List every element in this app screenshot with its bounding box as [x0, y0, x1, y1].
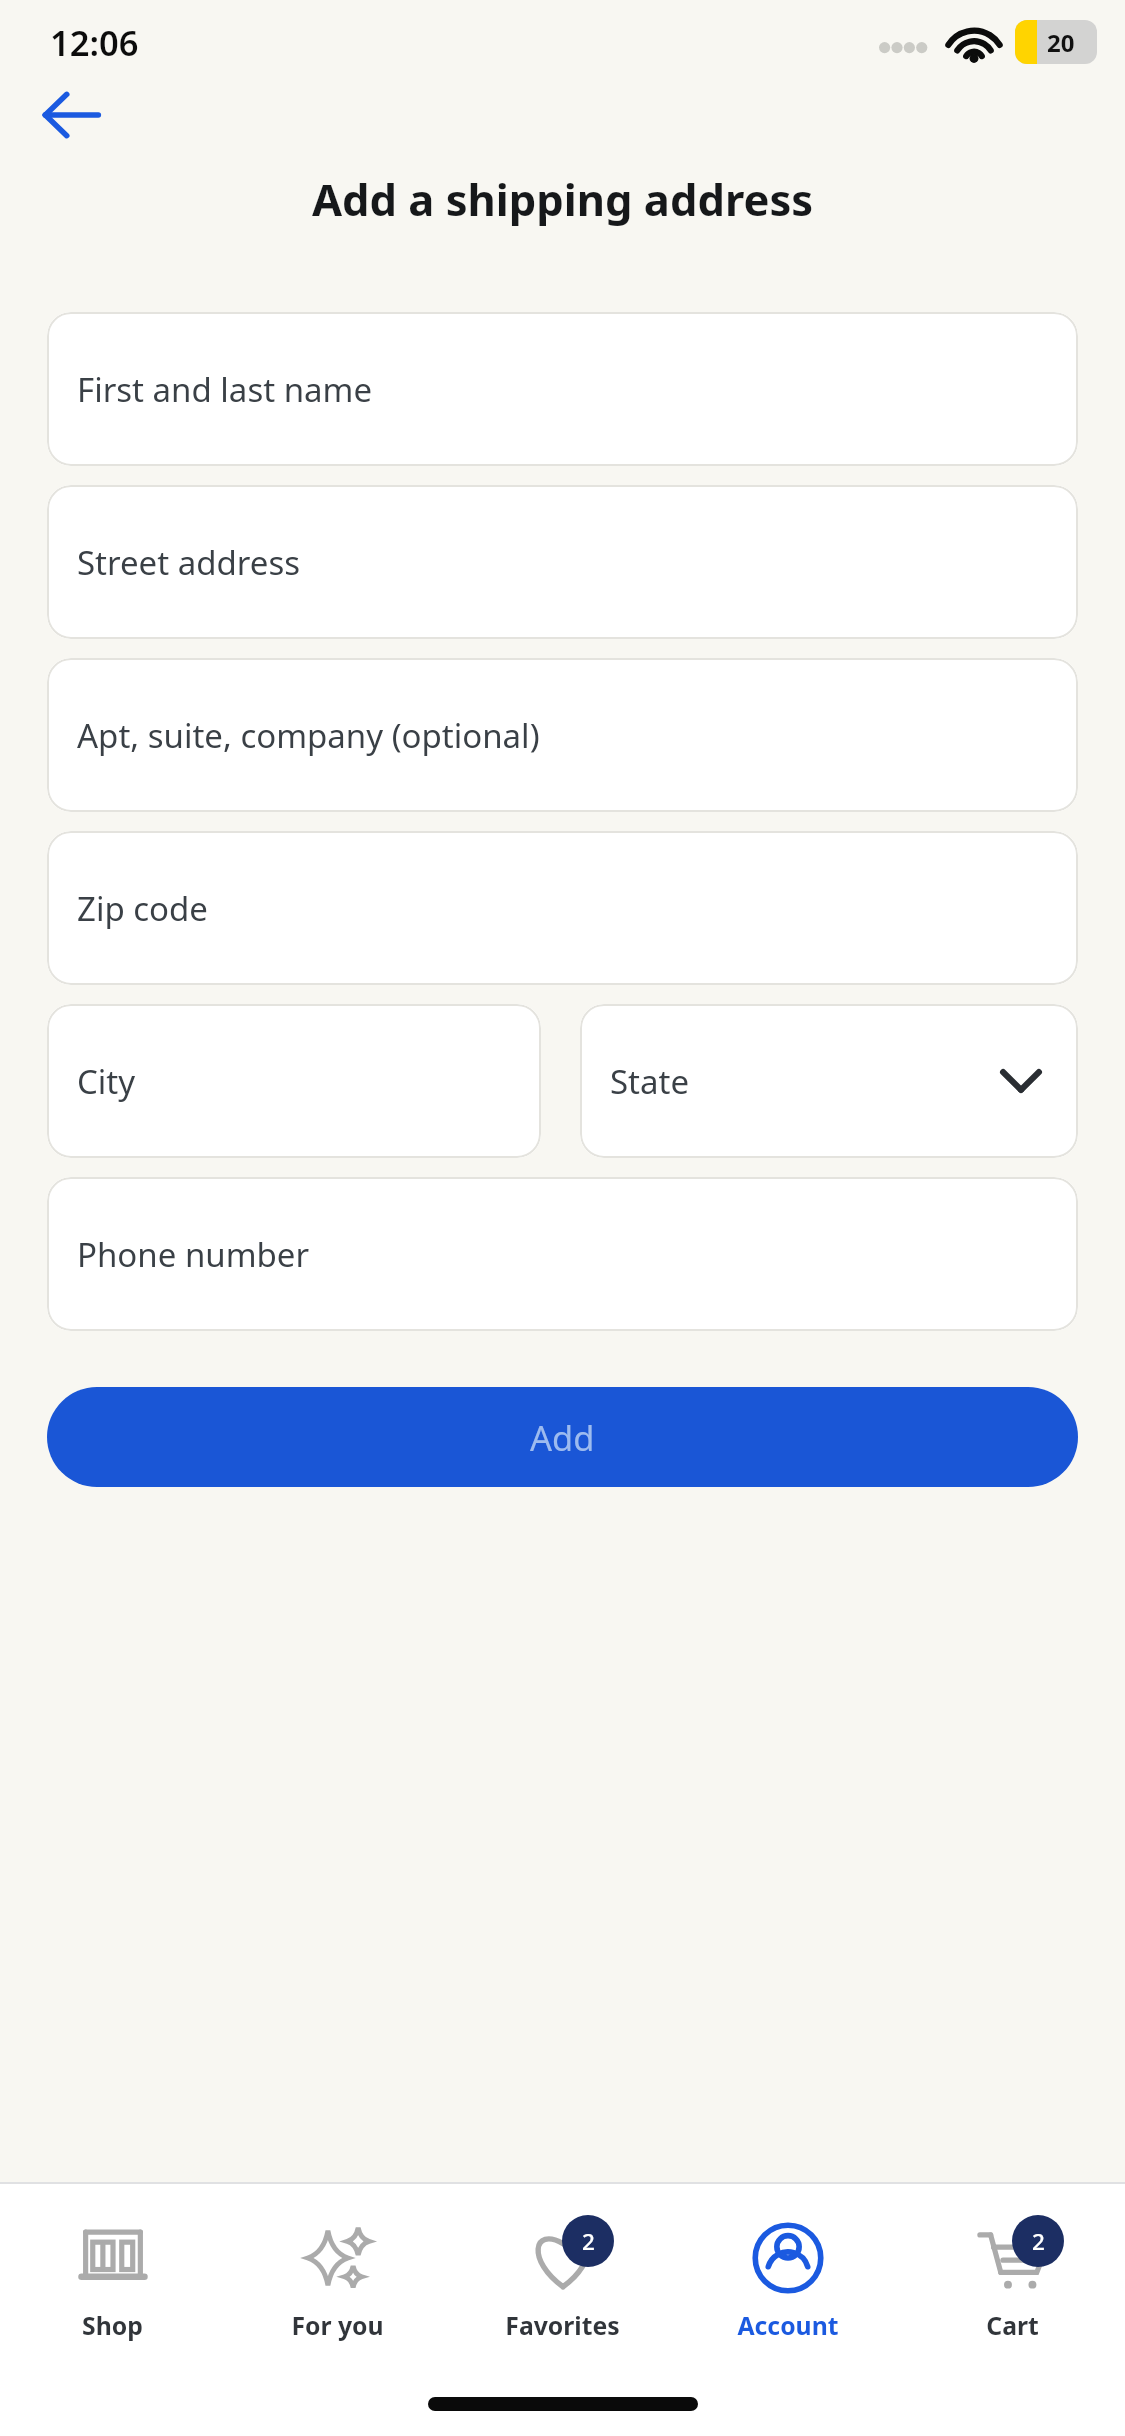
button[interactable]: Street address	[47, 485, 1078, 639]
staticText: Account	[737, 2309, 839, 2343]
staticText: For you	[291, 2309, 384, 2343]
staticText: Street address	[77, 540, 301, 585]
staticText: 12:06	[50, 19, 139, 66]
staticText: Add	[530, 1414, 595, 1461]
staticText: Add a shipping address	[0, 169, 1125, 228]
staticText: Cart	[986, 2309, 1039, 2343]
staticText: City	[77, 1059, 136, 1104]
staticText: Phone number	[77, 1232, 310, 1277]
button[interactable]: Shop	[0, 2213, 225, 2343]
button[interactable]: Account	[675, 2213, 900, 2343]
staticText: Shop	[82, 2309, 143, 2343]
button[interactable]: Back	[24, 84, 118, 146]
staticText: 20	[1047, 26, 1075, 59]
button[interactable]: City	[47, 1004, 541, 1158]
staticText: Favorites	[505, 2309, 620, 2343]
button[interactable]: 2	[900, 2213, 1125, 2343]
staticText: Zip code	[77, 886, 208, 931]
button[interactable]: 2	[450, 2213, 675, 2343]
button[interactable]: Add	[47, 1387, 1078, 1487]
button[interactable]: Phone number	[47, 1177, 1078, 1331]
staticText: State	[610, 1059, 690, 1104]
staticText: 2	[582, 2226, 595, 2257]
button[interactable]: Zip code	[47, 831, 1078, 985]
button[interactable]: State	[580, 1004, 1078, 1158]
staticText: Apt, suite, company (optional)	[77, 713, 540, 758]
button[interactable]: For you	[225, 2213, 450, 2343]
button[interactable]: Apt, suite, company (optional)	[47, 658, 1078, 812]
staticText: First and last name	[77, 367, 373, 412]
staticText: 2	[1032, 2226, 1045, 2257]
button[interactable]: First and last name	[47, 312, 1078, 466]
